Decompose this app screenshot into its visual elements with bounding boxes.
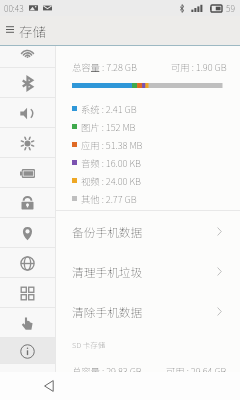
staticText: 59 xyxy=(226,2,235,14)
button[interactable]: Info xyxy=(0,338,55,364)
button[interactable]: Apps xyxy=(0,278,55,308)
button[interactable]: 清理手机垃圾 xyxy=(56,251,240,291)
staticText: 00:43 xyxy=(4,2,24,14)
button[interactable]: Menu xyxy=(0,16,19,45)
staticText: 清除手机数据 xyxy=(72,303,143,320)
staticText: 图片 : 152 MB xyxy=(81,120,136,133)
button[interactable]: Lock xyxy=(0,188,55,218)
button[interactable]: Network xyxy=(0,248,55,278)
button[interactable]: Bluetooth xyxy=(0,68,55,98)
staticText: SD 卡存储 xyxy=(72,339,106,350)
staticText: 备份手机数据 xyxy=(72,223,143,240)
staticText: 总容量 : 29.83 GB xyxy=(72,364,142,372)
button[interactable]: Battery xyxy=(0,158,55,188)
button[interactable]: Wi-Fi xyxy=(0,46,55,68)
staticText: 存储 xyxy=(19,21,46,41)
button[interactable]: Volume xyxy=(0,98,55,128)
button[interactable]: Location xyxy=(0,218,55,248)
staticText: 可用 : 1.90 GB xyxy=(171,60,227,72)
staticText: 其他 : 2.77 GB xyxy=(81,192,137,205)
staticText: 总容量 : 7.28 GB xyxy=(72,60,137,72)
staticText: 应用 : 51.38 MB xyxy=(81,138,143,151)
button[interactable]: 清除手机数据 xyxy=(56,291,240,331)
staticText: 视频 : 24.00 KB xyxy=(81,174,141,187)
button[interactable]: 备份手机数据 xyxy=(56,211,240,251)
button[interactable]: Brightness xyxy=(0,128,55,158)
staticText: 音频 : 16.00 KB xyxy=(81,156,141,169)
button[interactable]: Back xyxy=(35,372,63,400)
button[interactable]: Touch xyxy=(0,308,55,338)
staticText: 系统 : 2.41 GB xyxy=(81,102,137,115)
staticText: 清理手机垃圾 xyxy=(72,263,143,280)
staticText: 可用 : 29.64 GB xyxy=(166,364,227,372)
